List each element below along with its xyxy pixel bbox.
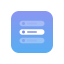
button[interactable]: List app icon [11,11,53,53]
